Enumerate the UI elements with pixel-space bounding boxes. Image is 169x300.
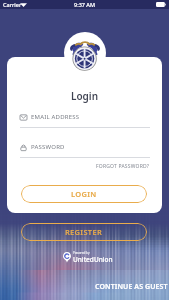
button[interactable]: LOGIN [21,185,147,203]
staticText: EMAIL ADDRESS [31,113,80,121]
button[interactable]: Powered by [63,251,113,263]
button[interactable]: PASSWORD [20,142,150,158]
staticText: 9:37 AM [74,1,96,8]
staticText: Powered by [73,251,90,255]
staticText: PASSWORD [31,143,65,151]
staticText: CONTINUE AS GUEST [95,282,168,292]
button[interactable]: REGISTER [21,223,147,241]
staticText: LOGIN [71,189,97,199]
staticText: FORGOT PASSWORD? [96,163,150,170]
button[interactable]: CONTINUE AS GUEST [95,281,168,293]
button[interactable]: EMAIL ADDRESS [20,112,150,128]
button[interactable]: FORGOT PASSWORD? [92,161,150,171]
staticText: UnitedUnion [73,255,113,263]
staticText: Carrier [3,1,22,8]
staticText: Login [0,89,169,103]
staticText: REGISTER [65,227,103,237]
